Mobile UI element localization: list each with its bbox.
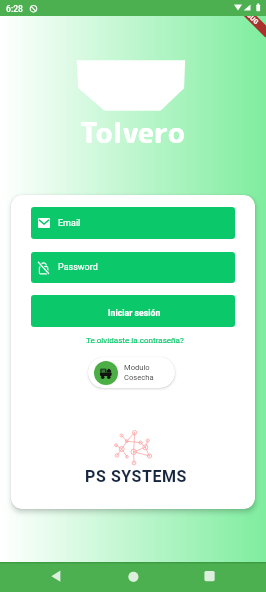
button[interactable]: Home — [119, 562, 147, 586]
button[interactable]: Recent apps — [195, 562, 223, 586]
staticText: 6:28 — [6, 4, 23, 14]
staticText: Modulo — [124, 363, 150, 372]
staticText: DEBUG — [239, 5, 261, 27]
button[interactable]: Back — [42, 562, 70, 586]
staticText: Email — [58, 218, 81, 229]
button[interactable]: Modulo — [88, 357, 175, 388]
staticText: PS SYSTEMS — [3, 467, 266, 486]
button[interactable]: Email — [31, 207, 235, 239]
staticText: Tolvero — [0, 112, 265, 152]
staticText: Password — [58, 262, 98, 273]
staticText: Iniciar sesión — [108, 308, 161, 318]
button[interactable]: Iniciar sesión — [31, 295, 235, 327]
button[interactable]: Password — [31, 252, 235, 283]
staticText: Cosecha — [124, 373, 154, 382]
button[interactable]: Te olvidaste la contraseña? — [72, 332, 198, 347]
staticText: Te olvidaste la contraseña? — [86, 335, 184, 344]
